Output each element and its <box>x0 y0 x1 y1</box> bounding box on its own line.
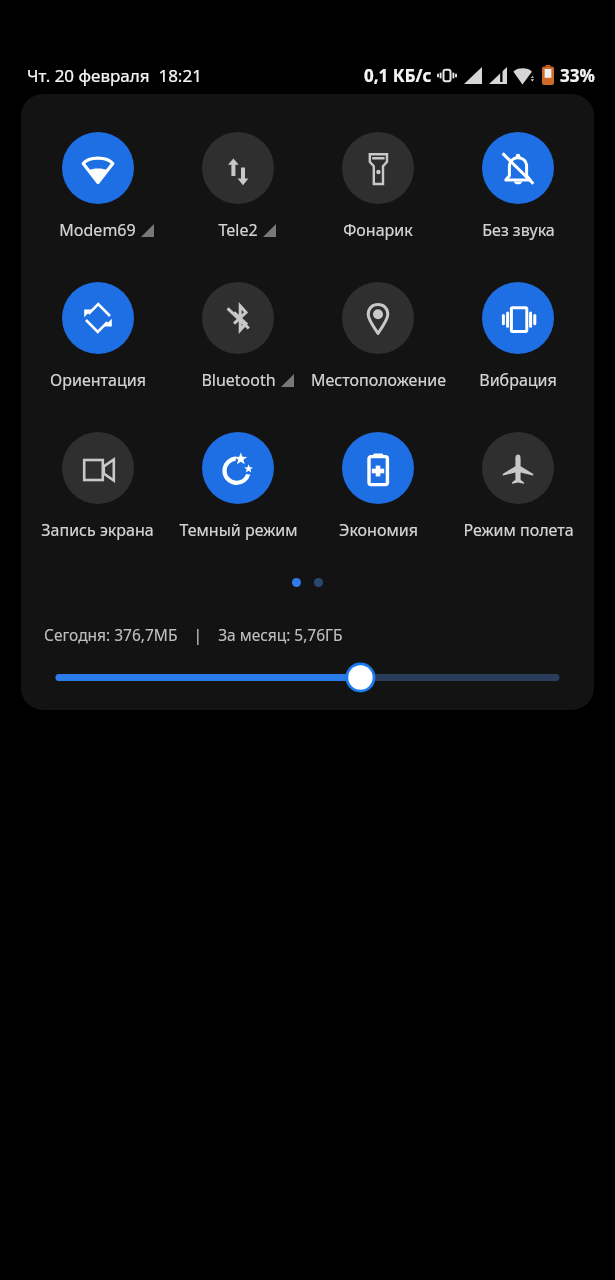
staticText: 0,1 КБ/с <box>364 64 432 87</box>
button[interactable]: Вибрация <box>448 282 588 391</box>
button[interactable]: Tele2 <box>168 132 308 241</box>
staticText: Экономия <box>339 519 418 541</box>
button[interactable]: Brightness <box>49 657 565 697</box>
staticText: Вибрация <box>479 369 557 391</box>
button[interactable]: Ориентация <box>27 282 168 391</box>
staticText: Запись экрана <box>41 519 154 541</box>
button[interactable]: Без звука <box>448 132 588 241</box>
staticText: Сегодня: 376,7МБ | За месяц: 5,76ГБ <box>44 624 343 645</box>
button[interactable]: Modem69 <box>27 132 168 241</box>
button[interactable]: Режим полета <box>448 432 588 541</box>
staticText: Tele2 <box>218 219 258 241</box>
staticText: Темный режим <box>179 519 298 541</box>
button[interactable]: Фонарик <box>308 132 448 241</box>
button[interactable]: Местоположение <box>308 282 448 391</box>
staticText: Местоположение <box>311 369 446 391</box>
button[interactable]: Экономия <box>308 432 448 541</box>
staticText: Режим полета <box>463 519 574 541</box>
staticText: Без звука <box>482 219 555 241</box>
staticText: Ориентация <box>50 369 146 391</box>
staticText: Bluetooth <box>201 369 276 391</box>
staticText: Modem69 <box>59 219 136 241</box>
button[interactable]: Bluetooth <box>168 282 308 391</box>
staticText: 33% <box>560 64 595 87</box>
staticText: Фонарик <box>343 219 413 241</box>
button[interactable]: Запись экрана <box>27 432 168 541</box>
staticText: Чт. 20 февраля 18:21 <box>27 64 202 87</box>
button[interactable]: Темный режим <box>168 432 308 541</box>
